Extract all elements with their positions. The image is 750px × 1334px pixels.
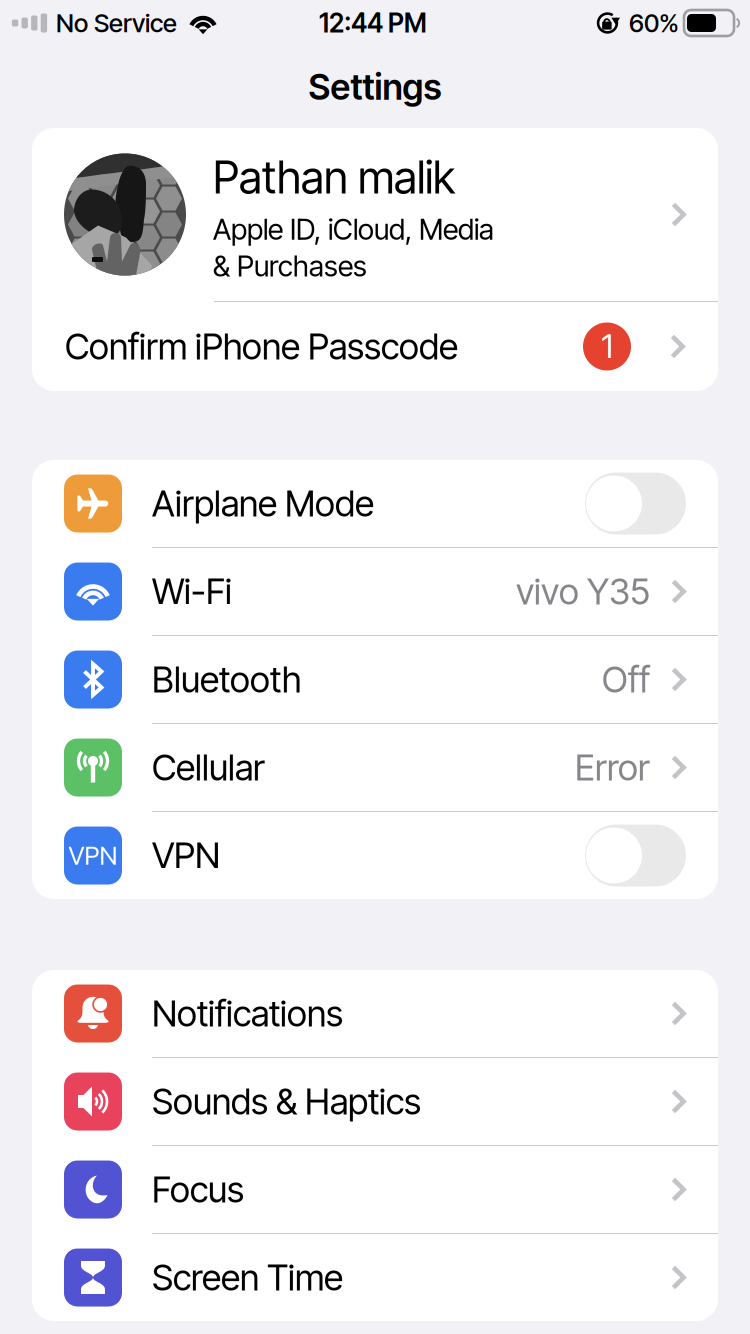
button[interactable]: Screen Time xyxy=(32,1234,718,1321)
staticText: Apple ID, iCloud, Media xyxy=(213,212,494,247)
staticText: Confirm iPhone Passcode xyxy=(65,325,458,368)
staticText: Pathan malik xyxy=(213,150,455,204)
button[interactable]: Confirm iPhone Passcode xyxy=(32,302,718,391)
button[interactable]: Pathan malik xyxy=(32,128,718,301)
staticText: No Service xyxy=(56,8,177,38)
staticText: Screen Time xyxy=(152,1256,343,1299)
staticText: Settings xyxy=(308,66,441,108)
staticText: VPN xyxy=(68,840,117,871)
button[interactable]: Focus xyxy=(32,1146,718,1233)
staticText: Off xyxy=(602,658,650,701)
staticText: Cellular xyxy=(152,746,265,789)
staticText: Focus xyxy=(152,1168,244,1211)
staticText: 60% xyxy=(629,8,679,38)
button[interactable]: VPN xyxy=(32,812,718,899)
staticText: & Purchases xyxy=(213,249,367,283)
button[interactable]: Wi-Fi xyxy=(32,548,718,635)
staticText: Wi-Fi xyxy=(152,570,232,613)
button[interactable]: Notifications xyxy=(32,970,718,1057)
button[interactable]: Bluetooth xyxy=(32,636,718,723)
staticText: Error xyxy=(575,746,650,789)
staticText: Sounds & Haptics xyxy=(152,1080,421,1123)
staticText: Notifications xyxy=(152,992,343,1035)
button[interactable]: Sounds & Haptics xyxy=(32,1058,718,1145)
staticText: 12:44 PM xyxy=(319,7,427,39)
button[interactable]: Cellular xyxy=(32,724,718,811)
staticText: Airplane Mode xyxy=(152,482,374,525)
staticText: vivo Y35 xyxy=(516,570,650,613)
staticText: 1 xyxy=(601,327,612,366)
button[interactable]: Airplane Mode xyxy=(32,460,718,547)
staticText: VPN xyxy=(152,834,220,877)
staticText: Bluetooth xyxy=(152,658,301,701)
